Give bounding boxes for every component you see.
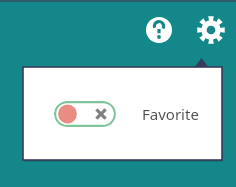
button[interactable]: Help: [142, 13, 176, 47]
staticText: Favorite: [142, 104, 199, 124]
button[interactable]: Settings: [194, 13, 228, 47]
button[interactable]: Toggle favorite off: [54, 101, 199, 127]
button[interactable]: Toggle favorite off: [54, 101, 116, 127]
